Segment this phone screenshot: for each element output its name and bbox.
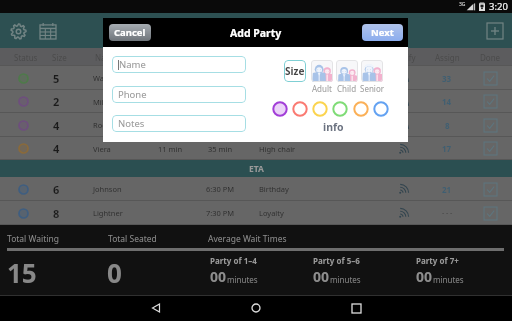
- staticText: Child: [337, 83, 357, 94]
- staticText: Cancel: [114, 26, 146, 39]
- staticText: Loyalty: [259, 208, 284, 218]
- button[interactable]: 2: [0, 90, 512, 113]
- button[interactable]: Recents: [306, 295, 406, 321]
- staticText: minutes: [227, 274, 258, 285]
- staticText: 8: [445, 120, 450, 131]
- staticText: Notes: [118, 117, 145, 130]
- staticText: 3G: [459, 1, 466, 8]
- button[interactable]: Next: [362, 24, 403, 41]
- staticText: Walker: [93, 73, 118, 83]
- staticText: minutes: [433, 274, 464, 285]
- staticText: Done: [480, 52, 501, 63]
- button[interactable]: 8: [0, 201, 512, 225]
- button[interactable]: [312, 101, 328, 117]
- staticText: Johnson: [93, 184, 122, 194]
- staticText: 4: [53, 141, 60, 156]
- button[interactable]: 5: [0, 66, 512, 90]
- staticText: Name: [95, 52, 118, 63]
- staticText: 14: [442, 96, 452, 107]
- staticText: 0: [107, 255, 122, 290]
- button[interactable]: [361, 60, 383, 82]
- staticText: 7:30 PM: [206, 208, 235, 218]
- staticText: Senior: [360, 83, 385, 94]
- staticText: Size: [285, 64, 305, 78]
- button[interactable]: 4: [0, 113, 512, 137]
- staticText: High chair: [259, 144, 296, 154]
- button[interactable]: Notes: [112, 115, 246, 132]
- staticText: 33: [442, 73, 452, 84]
- staticText: Party of 7+: [416, 255, 459, 266]
- staticText: 8: [53, 206, 60, 221]
- staticText: Assign: [435, 52, 460, 63]
- staticText: 6: [53, 182, 60, 197]
- button[interactable]: [336, 60, 358, 82]
- button[interactable]: [311, 60, 333, 82]
- button[interactable]: Add: [484, 20, 506, 42]
- staticText: Party of 5–6: [313, 255, 360, 266]
- button[interactable]: Name: [112, 56, 246, 73]
- staticText: - - -: [442, 208, 453, 218]
- button[interactable]: Home: [206, 295, 306, 321]
- staticText: 3:20: [489, 0, 508, 13]
- staticText: Birthday: [259, 184, 289, 194]
- staticText: Next: [371, 26, 394, 39]
- staticText: Total Waiting: [7, 233, 59, 245]
- button[interactable]: Phone: [112, 86, 246, 103]
- staticText: 15: [7, 255, 37, 290]
- staticText: Notify: [393, 52, 416, 63]
- staticText: Miller: [93, 97, 113, 107]
- button[interactable]: 4: [0, 137, 512, 160]
- button[interactable]: Calendar: [37, 20, 59, 42]
- button[interactable]: [373, 101, 389, 117]
- button[interactable]: [272, 101, 288, 117]
- button[interactable]: [332, 101, 348, 117]
- button[interactable]: 6: [0, 177, 512, 201]
- staticText: info: [323, 120, 344, 134]
- staticText: Rogers: [93, 120, 118, 130]
- staticText: ETA: [249, 163, 264, 175]
- button[interactable]: Back: [106, 295, 206, 321]
- staticText: 6:30 PM: [206, 184, 235, 194]
- staticText: Lightner: [93, 208, 123, 218]
- button[interactable]: [353, 101, 369, 117]
- staticText: Size: [52, 52, 67, 63]
- staticText: Add Party: [230, 26, 282, 40]
- staticText: Party of 1–4: [210, 255, 257, 266]
- staticText: 00: [416, 267, 433, 286]
- staticText: 5: [53, 71, 60, 86]
- staticText: 35 min: [208, 144, 233, 154]
- staticText: Phone: [118, 88, 147, 101]
- staticText: 00: [313, 267, 330, 286]
- staticText: 17: [442, 143, 452, 154]
- staticText: Quoted: [156, 52, 185, 63]
- staticText: Status: [14, 52, 38, 63]
- button[interactable]: Settings: [7, 20, 29, 42]
- staticText: Average Wait Times: [208, 233, 287, 245]
- staticText: Adult: [312, 83, 332, 94]
- button[interactable]: Cancel: [109, 24, 151, 41]
- staticText: 4: [53, 118, 60, 133]
- button[interactable]: [292, 101, 308, 117]
- staticText: minutes: [330, 274, 361, 285]
- staticText: 2: [53, 94, 60, 109]
- staticText: 21: [442, 184, 452, 195]
- staticText: Actual: [208, 52, 232, 63]
- staticText: Name: [119, 58, 146, 71]
- button[interactable]: Size: [284, 60, 306, 82]
- staticText: Viera: [93, 144, 111, 154]
- staticText: Total Seated: [108, 233, 157, 245]
- staticText: 11 min: [158, 144, 183, 154]
- staticText: 00: [210, 267, 227, 286]
